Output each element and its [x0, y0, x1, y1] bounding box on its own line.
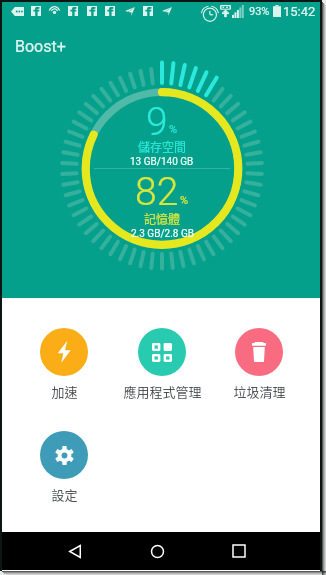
button[interactable]: 加速	[16, 324, 112, 405]
staticText: 9	[146, 99, 168, 145]
staticText: 93%	[249, 5, 270, 18]
staticText: 儲存空間	[138, 138, 187, 155]
button[interactable]: Recent apps	[225, 537, 253, 565]
staticText: 82	[135, 169, 179, 215]
staticText: %	[169, 123, 178, 136]
button[interactable]: 應用程式管理	[114, 324, 210, 405]
staticText: 記憶體	[144, 210, 181, 227]
staticText: 垃圾清理	[233, 382, 286, 401]
staticText: %	[180, 194, 189, 207]
button[interactable]: Home	[143, 537, 171, 565]
button[interactable]: 設定	[16, 427, 112, 508]
staticText: 應用程式管理	[123, 382, 202, 401]
staticText: Boost+	[15, 37, 66, 56]
button[interactable]: Back	[61, 537, 89, 565]
staticText: 13 GB/140 GB	[130, 156, 194, 168]
staticText: 加速	[51, 382, 78, 401]
staticText: 15:42	[283, 4, 316, 19]
button[interactable]: 垃圾清理	[211, 324, 307, 405]
staticText: 設定	[51, 485, 78, 504]
staticText: 2.3 GB/2.8 GB	[131, 228, 194, 240]
